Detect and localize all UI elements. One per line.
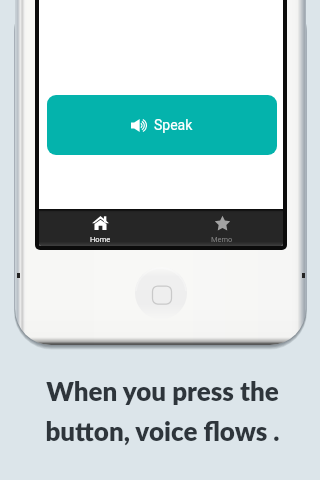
- staticText: button, voice flows .: [45, 415, 280, 446]
- staticText: Speak: [154, 117, 193, 133]
- button[interactable]: Home: [39, 209, 161, 246]
- staticText: Memo: [211, 235, 233, 244]
- button[interactable]: Speak: [47, 95, 277, 155]
- staticText: When you press the: [46, 375, 279, 406]
- button[interactable]: Memo: [161, 209, 283, 246]
- staticText: Home: [90, 235, 111, 244]
- button[interactable]: Home button: [135, 267, 187, 319]
